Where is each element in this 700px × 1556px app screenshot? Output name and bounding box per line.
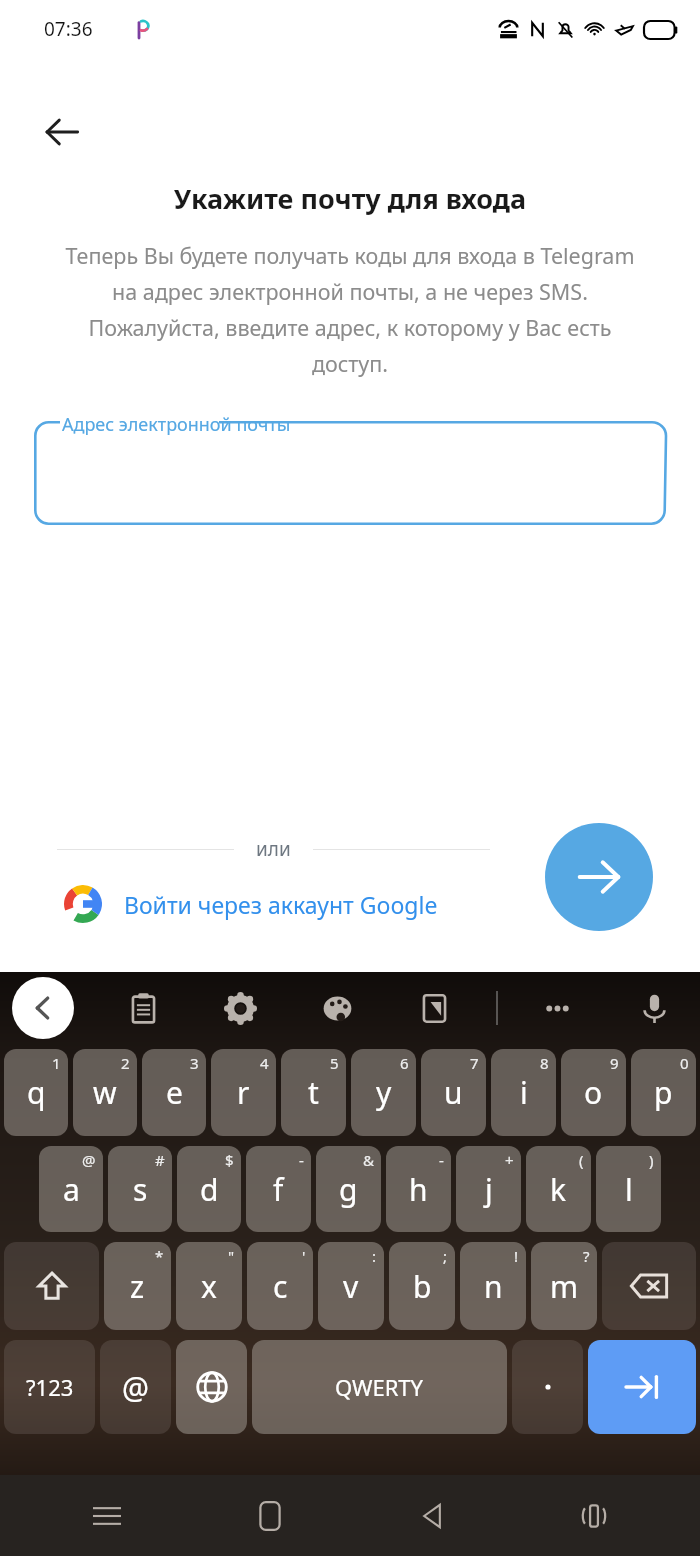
staticText: @ <box>82 1150 96 1170</box>
button[interactable] <box>176 1340 247 1434</box>
staticText: 7 <box>470 1053 479 1073</box>
staticText: ! <box>514 1246 519 1266</box>
staticText: 0 <box>680 1053 689 1073</box>
button[interactable]: v <box>318 1242 384 1330</box>
button[interactable]: f <box>246 1146 311 1232</box>
button[interactable]: d <box>177 1146 241 1232</box>
staticText: * <box>155 1246 164 1266</box>
button[interactable]: Theme <box>307 978 367 1038</box>
button[interactable]: j <box>456 1146 521 1232</box>
button[interactable]: c <box>247 1242 313 1330</box>
button[interactable]: k <box>526 1146 591 1232</box>
button[interactable]: a <box>39 1146 103 1232</box>
staticText: ' <box>302 1246 306 1266</box>
staticText: 8 <box>540 1053 549 1073</box>
button[interactable]: Close keyboard <box>12 977 74 1039</box>
staticText: 9 <box>610 1053 619 1073</box>
staticText: QWERTY <box>335 1372 424 1402</box>
button[interactable]: w <box>73 1049 137 1136</box>
staticText: z <box>130 1266 145 1307</box>
button[interactable]: Handwriting <box>404 978 464 1038</box>
staticText: 5 <box>330 1053 339 1073</box>
button[interactable]: e <box>142 1049 206 1136</box>
button[interactable]: Home <box>240 1486 300 1546</box>
button[interactable]: Vibrate mode <box>564 1486 624 1546</box>
staticText: " <box>228 1246 235 1266</box>
button[interactable]: Адрес электронной почты <box>34 421 666 525</box>
button[interactable]: Recent apps <box>77 1486 137 1546</box>
button[interactable]: Clipboard <box>113 978 173 1038</box>
button[interactable] <box>588 1340 696 1434</box>
staticText: t <box>308 1072 319 1113</box>
staticText: m <box>550 1266 579 1307</box>
staticText: # <box>155 1150 165 1170</box>
staticText: v <box>343 1266 359 1307</box>
staticText: $ <box>225 1150 234 1170</box>
staticText: & <box>363 1150 374 1170</box>
staticText: c <box>273 1266 288 1307</box>
button[interactable]: Voice input <box>624 978 684 1038</box>
staticText: x <box>201 1266 217 1307</box>
button[interactable]: t <box>281 1049 346 1136</box>
staticText: Войти через аккаунт Google <box>124 889 438 920</box>
button[interactable]: Settings <box>210 978 270 1038</box>
staticText: ; <box>443 1246 448 1266</box>
staticText: y <box>376 1072 392 1113</box>
staticText: 1 <box>52 1053 61 1073</box>
staticText: a <box>63 1169 80 1210</box>
button[interactable]: p <box>631 1049 696 1136</box>
staticText: f <box>273 1169 284 1210</box>
staticText: h <box>409 1169 428 1210</box>
button[interactable]: q <box>4 1049 68 1136</box>
button[interactable]: g <box>316 1146 381 1232</box>
staticText: ?123 <box>26 1372 74 1402</box>
staticText: k <box>550 1169 567 1210</box>
button[interactable] <box>602 1242 696 1330</box>
button[interactable]: o <box>561 1049 626 1136</box>
staticText: n <box>484 1266 503 1307</box>
button[interactable]: m <box>531 1242 597 1330</box>
button[interactable] <box>512 1340 583 1434</box>
button[interactable]: Back <box>402 1486 462 1546</box>
button[interactable] <box>4 1242 99 1330</box>
button[interactable]: ?123 <box>4 1340 95 1434</box>
button[interactable]: Continue <box>545 823 653 931</box>
staticText: p <box>654 1072 673 1113</box>
staticText: @ <box>122 1367 149 1408</box>
staticText: или <box>256 836 291 862</box>
staticText: w <box>93 1072 117 1113</box>
staticText: 2 <box>121 1053 130 1073</box>
button[interactable]: More options <box>527 978 587 1038</box>
staticText: r <box>237 1072 250 1113</box>
staticText: j <box>485 1169 493 1210</box>
staticText: - <box>439 1150 444 1170</box>
button[interactable]: i <box>491 1049 556 1136</box>
button[interactable]: b <box>389 1242 455 1330</box>
button[interactable]: y <box>351 1049 416 1136</box>
staticText: 6 <box>400 1053 409 1073</box>
staticText: e <box>166 1072 183 1113</box>
staticText: ? <box>583 1246 590 1266</box>
staticText: q <box>27 1072 46 1113</box>
staticText: Укажите почту для входа <box>24 180 676 217</box>
staticText: ( <box>579 1150 584 1170</box>
button[interactable]: l <box>596 1146 661 1232</box>
staticText: i <box>520 1072 528 1113</box>
button[interactable]: Back <box>30 100 94 164</box>
staticText: u <box>444 1072 463 1113</box>
button[interactable]: h <box>386 1146 451 1232</box>
button[interactable]: s <box>108 1146 172 1232</box>
button[interactable]: u <box>421 1049 486 1136</box>
staticText: d <box>200 1169 219 1210</box>
staticText: 3 <box>190 1053 199 1073</box>
staticText: Теперь Вы будете получать коды для входа… <box>62 241 638 379</box>
button[interactable]: x <box>176 1242 242 1330</box>
button[interactable]: @ <box>100 1340 171 1434</box>
button[interactable]: Войти через аккаунт Google <box>52 874 438 934</box>
button[interactable]: QWERTY <box>252 1340 507 1434</box>
button[interactable]: z <box>104 1242 171 1330</box>
button[interactable]: n <box>460 1242 526 1330</box>
staticText: g <box>339 1169 358 1210</box>
button[interactable]: r <box>211 1049 276 1136</box>
staticText: Адрес электронной почты <box>62 412 291 437</box>
